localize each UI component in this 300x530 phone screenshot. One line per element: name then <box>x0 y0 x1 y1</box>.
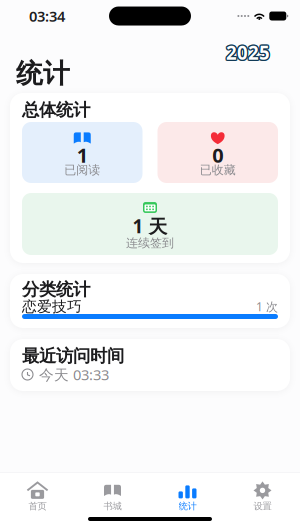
staticText: 已收藏 <box>200 163 236 177</box>
staticText: 2025 <box>227 41 271 66</box>
staticText: 03:34 <box>29 6 65 26</box>
staticText: 2025 <box>226 41 270 66</box>
staticText: 设置 <box>253 500 271 512</box>
staticText: 2025 <box>226 40 270 65</box>
staticText: 书城 <box>103 500 121 512</box>
staticText: 0 <box>212 142 223 168</box>
staticText: 2025 <box>225 39 269 64</box>
button[interactable]: 统计 <box>150 472 225 514</box>
staticText: 2025 <box>227 39 271 64</box>
button[interactable]: 设置 <box>225 472 300 514</box>
staticText: 1 <box>77 142 88 168</box>
button[interactable]: 2025 <box>226 40 270 65</box>
staticText: 2025 <box>226 39 270 64</box>
staticText: 统计 <box>178 500 196 512</box>
staticText: 2025 <box>225 41 269 66</box>
staticText: 首页 <box>28 500 46 512</box>
staticText: 恋爱技巧 <box>22 297 82 315</box>
staticText: 2025 <box>225 40 269 65</box>
staticText: 统计 <box>16 57 70 90</box>
staticText: 分类统计 <box>22 279 90 300</box>
staticText: 总体统计 <box>22 99 90 121</box>
staticText: 已阅读 <box>64 163 100 177</box>
staticText: 2025 <box>227 40 271 65</box>
button[interactable]: 首页 <box>0 472 75 514</box>
staticText: 连续签到 <box>126 236 174 250</box>
staticText: 1 次 <box>256 298 278 314</box>
button[interactable]: 书城 <box>75 472 150 514</box>
staticText: 最近访问时间 <box>22 345 124 367</box>
staticText: 今天 03:33 <box>39 365 109 384</box>
staticText: 1 天 <box>132 214 167 238</box>
